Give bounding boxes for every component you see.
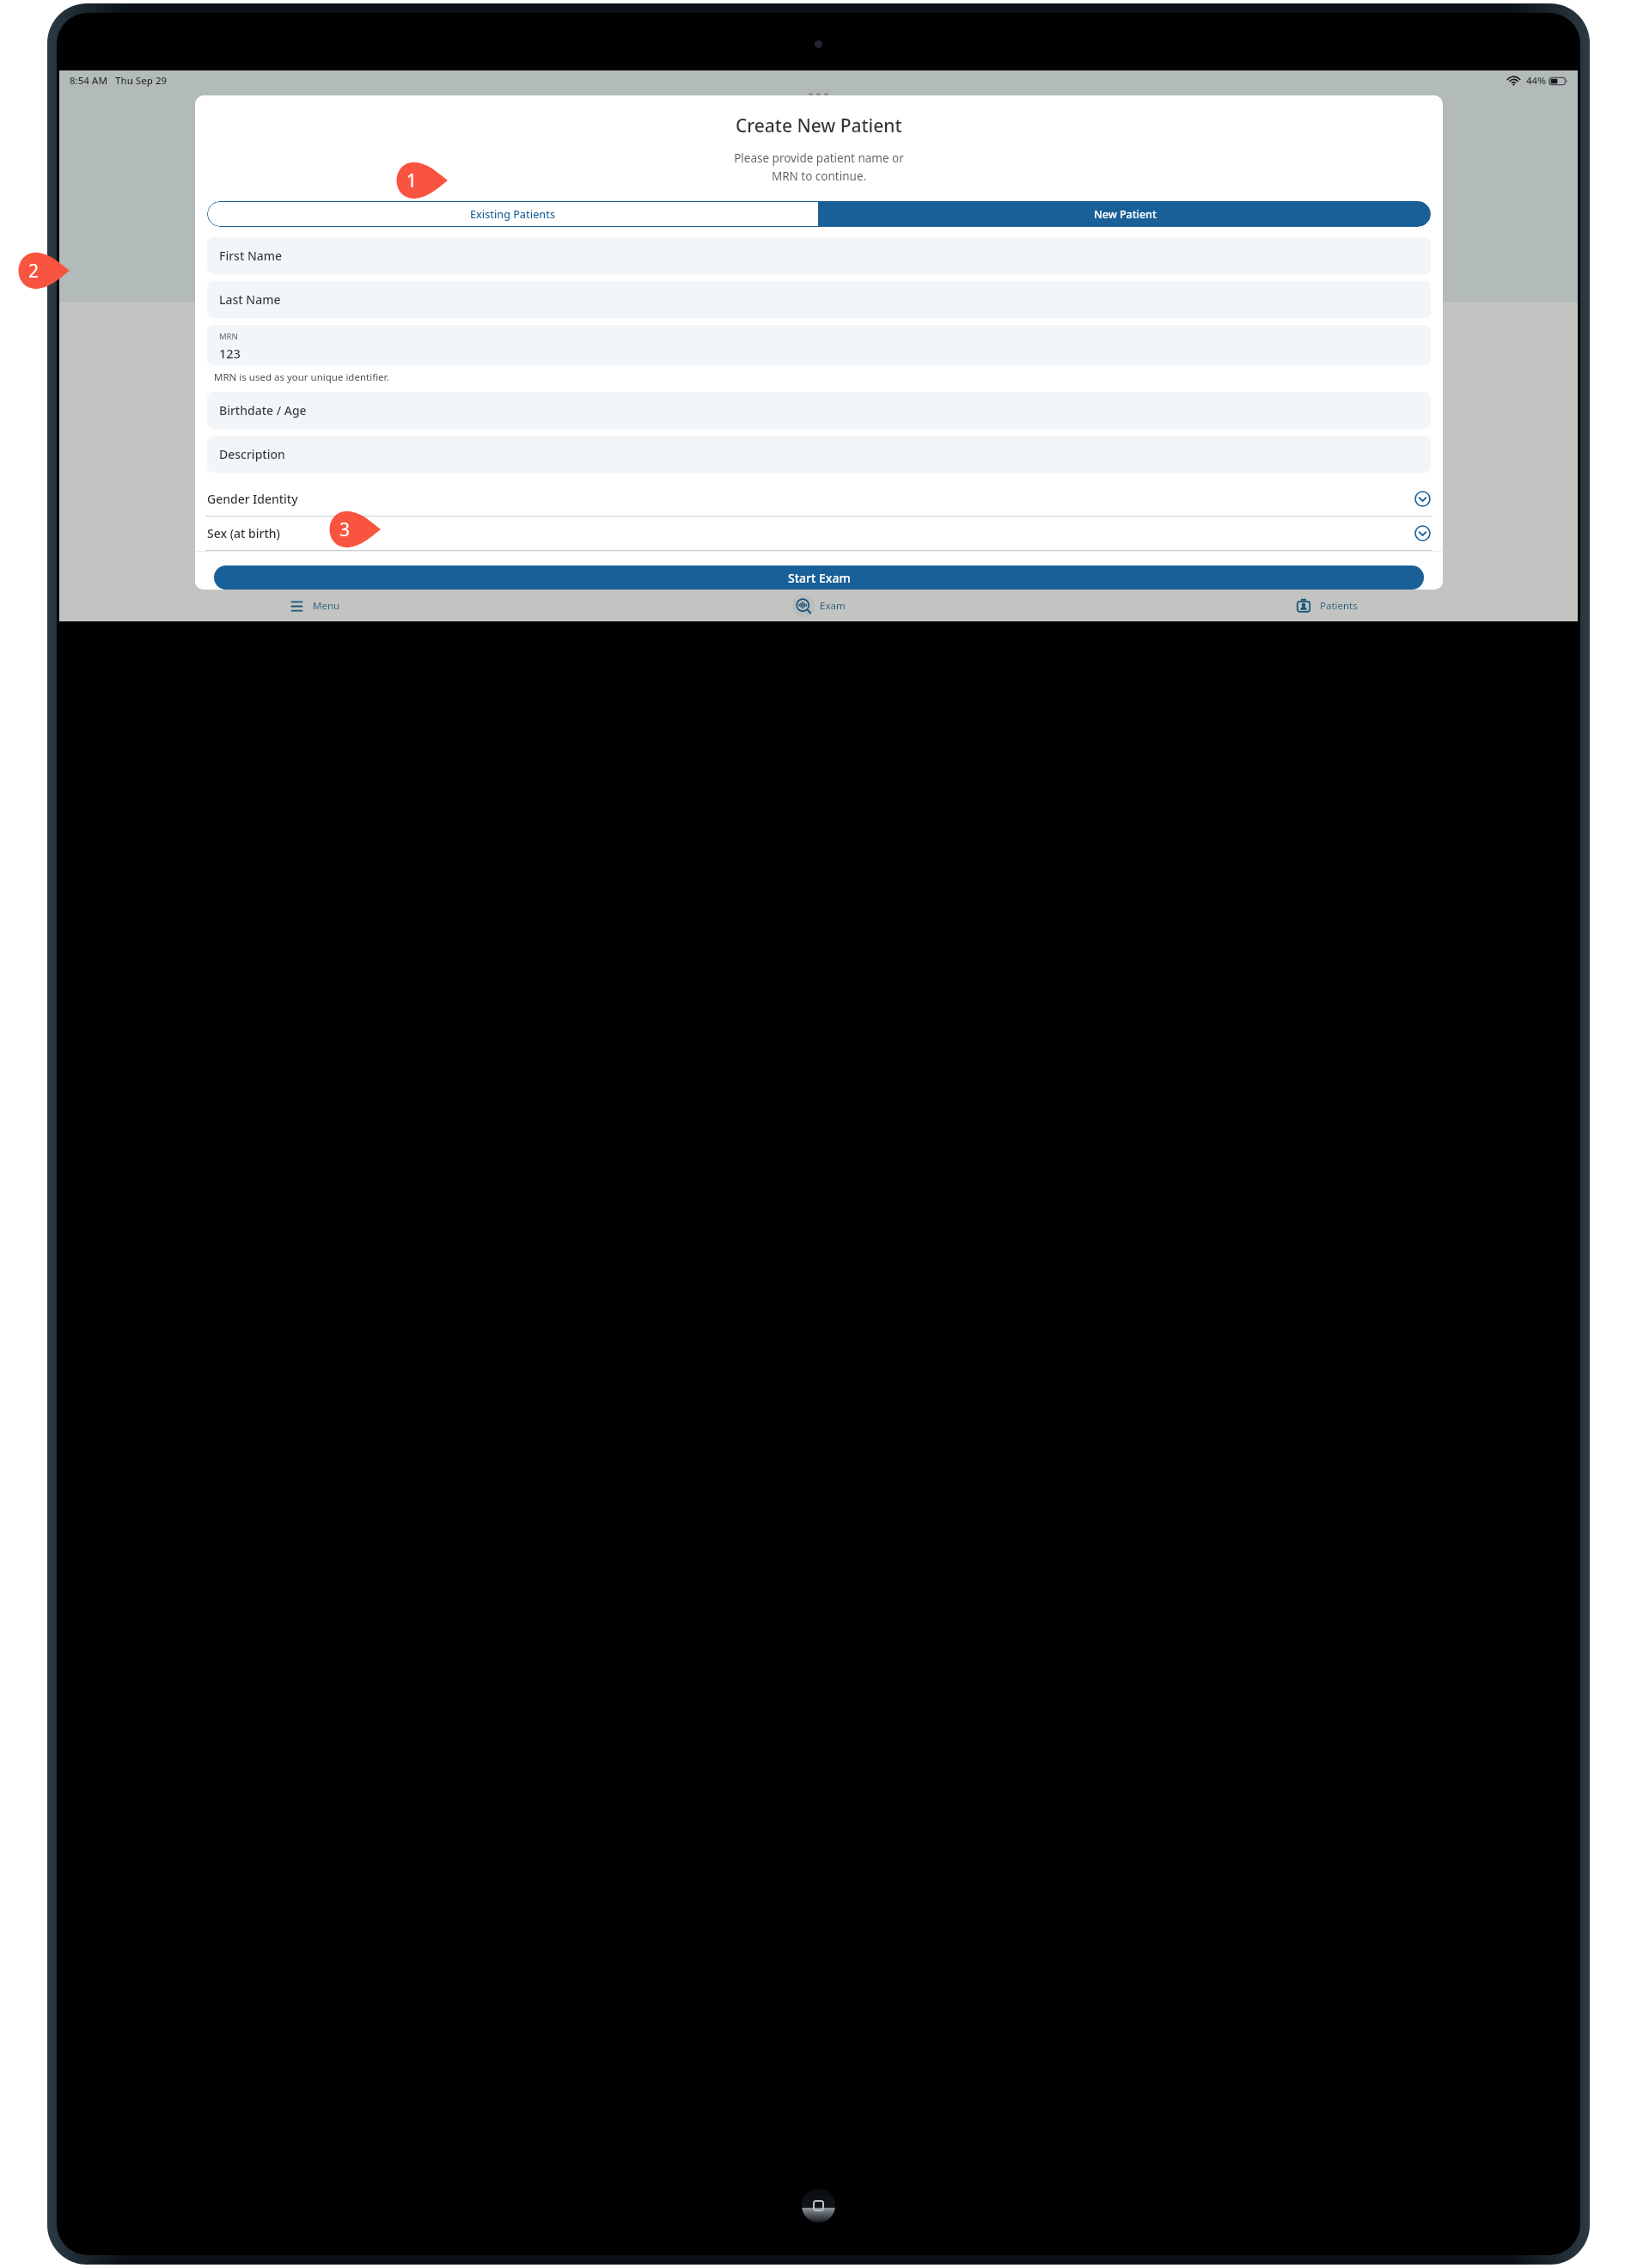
other: Battery 44 percent <box>1549 76 1567 86</box>
button[interactable]: Existing Patients <box>207 201 819 227</box>
staticText: Start Exam <box>788 570 851 586</box>
staticText: Birthdate / Age <box>219 402 307 419</box>
staticText: Thu Sep 29 <box>115 74 168 88</box>
staticText: 8:54 AM <box>70 74 107 88</box>
button[interactable]: Exam <box>565 590 1072 621</box>
staticText: MRN <box>219 331 238 342</box>
staticText: 2 <box>28 259 40 284</box>
staticText: New Patient <box>1094 207 1157 222</box>
button[interactable]: Start Exam <box>214 565 1424 590</box>
other: Patients <box>1296 598 1311 614</box>
staticText: Exam <box>820 599 846 613</box>
other: Menu <box>290 599 304 614</box>
button[interactable]: Sex (at birth) <box>205 517 1432 551</box>
button[interactable]: Birthdate / Age <box>207 392 1431 429</box>
staticText: First Name <box>219 248 283 264</box>
button[interactable]: New Patient <box>819 201 1431 227</box>
button[interactable]: Menu <box>59 590 565 621</box>
other: Wi-Fi <box>1507 76 1520 86</box>
staticText: Cardiac Exam <box>783 113 855 129</box>
staticText: Gender Identity <box>207 491 298 507</box>
staticText: Please provide patient name or MRN to co… <box>734 150 904 184</box>
staticText: Menu <box>313 599 340 613</box>
staticText: Existing Patients <box>470 207 556 222</box>
other: Exam <box>796 598 812 614</box>
staticText: 3 <box>339 517 351 542</box>
staticText: Sex (at birth) <box>207 525 280 541</box>
button[interactable]: Description <box>207 436 1431 473</box>
button[interactable]: MRN <box>207 325 1431 365</box>
button[interactable]: Patients <box>1072 590 1578 621</box>
staticText: Patients <box>1320 599 1358 613</box>
staticText: MRN is used as your unique identifier. <box>214 370 389 384</box>
staticText: 44% <box>1526 74 1546 88</box>
staticText: Create New Patient <box>736 113 902 138</box>
staticText: Description <box>219 446 285 462</box>
staticText: 1 <box>406 168 418 193</box>
button[interactable]: Gender Identity <box>205 482 1432 517</box>
button[interactable]: First Name <box>207 237 1431 274</box>
other: Expand Gender Identity <box>1414 491 1431 507</box>
other: Expand Sex (at birth) <box>1414 525 1431 541</box>
button[interactable]: Last Name <box>207 281 1431 318</box>
staticText: 123 <box>219 345 241 362</box>
staticText: Last Name <box>219 291 281 308</box>
